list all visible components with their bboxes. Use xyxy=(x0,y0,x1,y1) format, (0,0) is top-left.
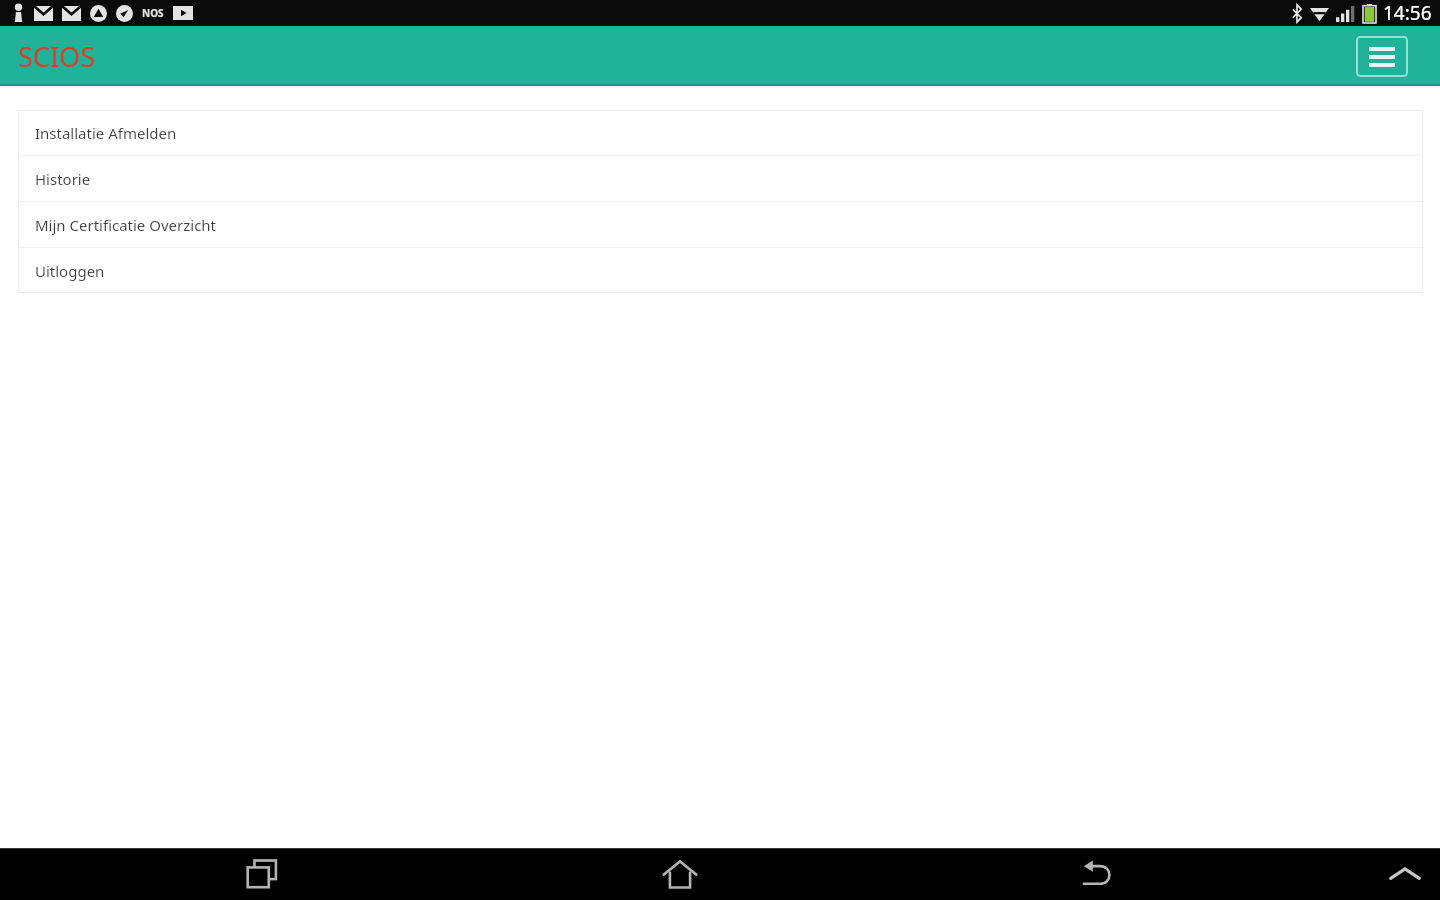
button[interactable]: Home xyxy=(605,848,755,900)
staticText: Installatie Afmelden xyxy=(35,123,177,143)
button[interactable]: Back xyxy=(1021,848,1171,900)
staticText: SCIOS xyxy=(18,38,95,75)
button[interactable]: Installatie Afmelden xyxy=(18,110,1423,155)
button[interactable]: Historie xyxy=(18,156,1423,201)
staticText: Uitloggen xyxy=(35,261,105,281)
staticText: Mijn Certificatie Overzicht xyxy=(35,215,217,235)
staticText: 14:56 xyxy=(1383,0,1432,26)
staticText: Historie xyxy=(35,169,91,189)
button[interactable]: Menu xyxy=(1356,36,1408,77)
staticText: NOS xyxy=(142,6,164,20)
button[interactable]: Recent apps xyxy=(189,848,339,900)
button[interactable]: Mijn Certificatie Overzicht xyxy=(18,202,1423,247)
button[interactable]: Expand xyxy=(1370,848,1440,900)
button[interactable]: Uitloggen xyxy=(18,248,1423,293)
